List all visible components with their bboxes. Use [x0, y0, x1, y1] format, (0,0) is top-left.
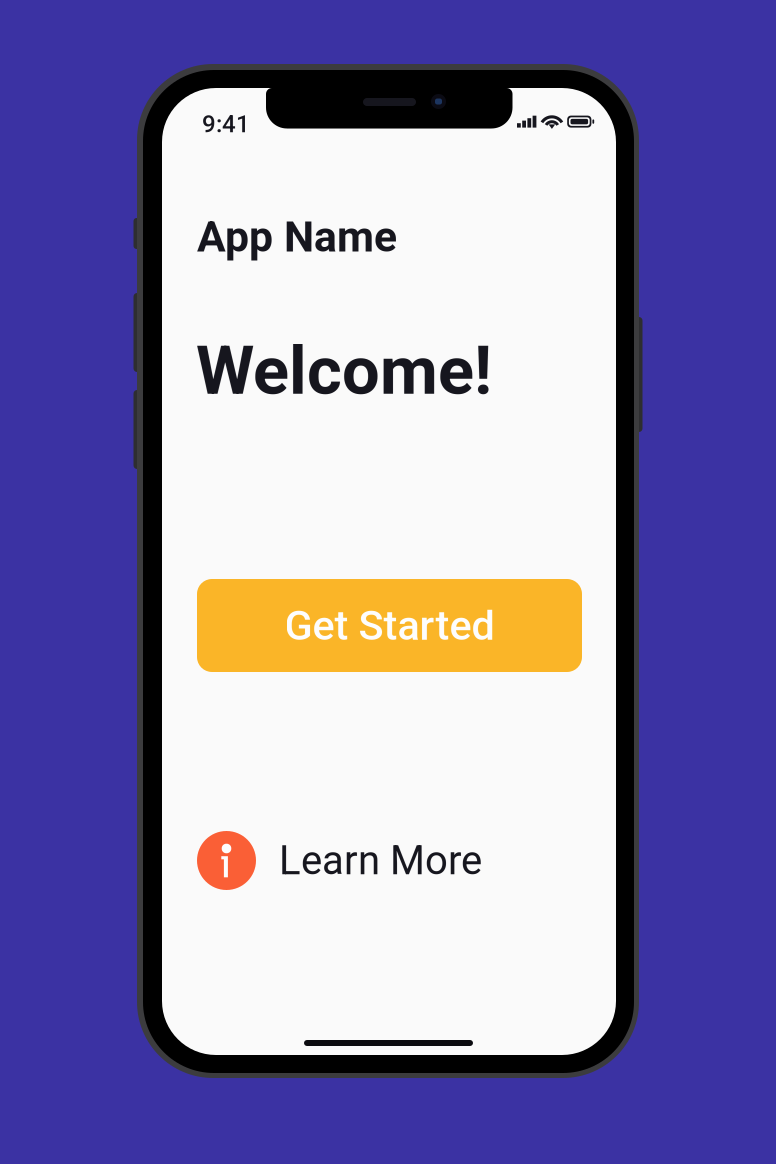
staticText: App Name [197, 212, 397, 262]
button[interactable]: Get Started [197, 579, 582, 672]
staticText: Get Started [284, 601, 494, 650]
staticText: 9:41 [202, 110, 250, 138]
staticText: Learn More [279, 837, 482, 884]
button[interactable]: Learn More [197, 831, 482, 890]
staticText: Welcome! [196, 332, 492, 410]
